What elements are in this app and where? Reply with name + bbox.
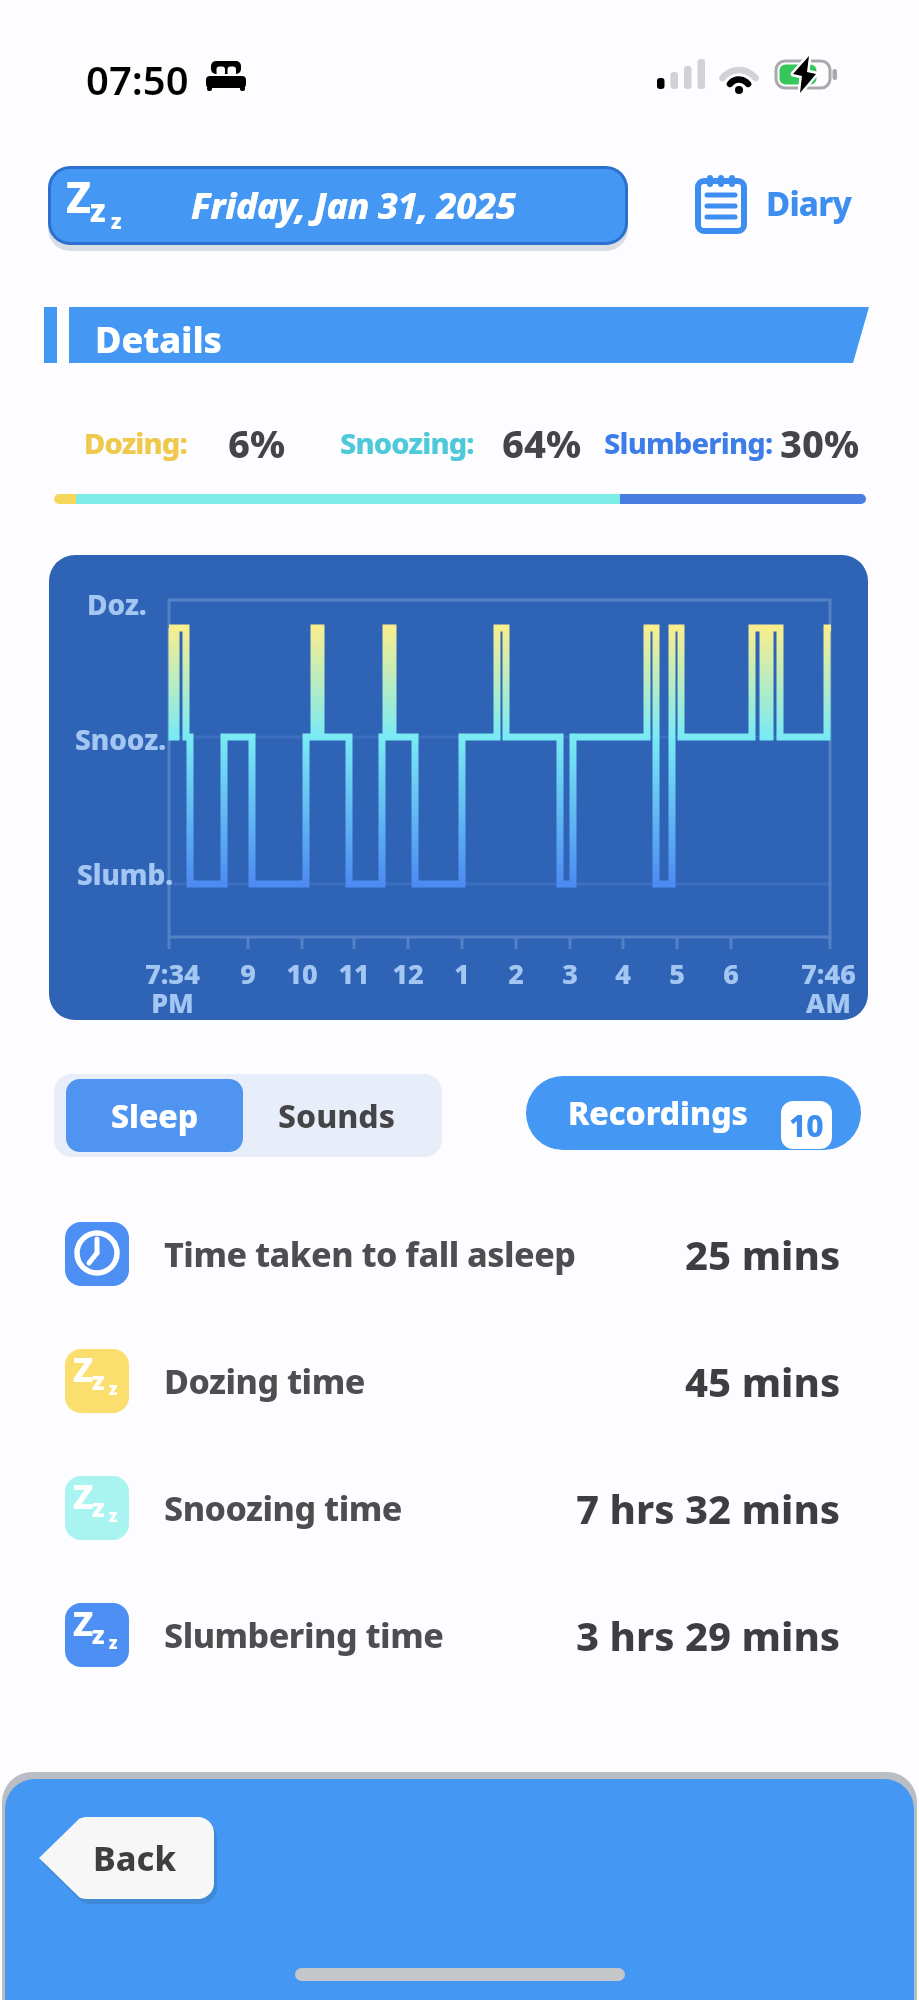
staticText: Snoozing time bbox=[164, 1485, 402, 1531]
staticText: Z bbox=[73, 1473, 94, 1519]
staticText: 11 bbox=[338, 955, 370, 992]
staticText: Slumbering: bbox=[604, 423, 773, 462]
staticText: Time taken to fall asleep bbox=[164, 1231, 576, 1277]
staticText: 3 hrs 29 mins bbox=[576, 1608, 841, 1662]
staticText: Recordings bbox=[568, 1091, 748, 1135]
staticText: z bbox=[109, 1631, 118, 1654]
staticText: 25 mins bbox=[685, 1227, 841, 1281]
staticText: Snooz. bbox=[75, 720, 167, 758]
staticText: z bbox=[109, 1377, 118, 1400]
staticText: 6 bbox=[723, 955, 739, 992]
staticText: Sounds bbox=[278, 1094, 396, 1138]
staticText: z bbox=[109, 1504, 118, 1527]
staticText: Z bbox=[73, 1600, 94, 1646]
staticText: Dozing: bbox=[84, 423, 187, 462]
staticText: Z bbox=[73, 1346, 94, 1392]
staticText: 7 hrs 32 mins bbox=[576, 1481, 841, 1535]
staticText: 10 bbox=[789, 1105, 824, 1146]
staticText: 12 bbox=[392, 955, 424, 992]
staticText: Diary bbox=[766, 181, 852, 226]
staticText: 7:34 PM bbox=[145, 955, 200, 1021]
staticText: Dozing time bbox=[164, 1358, 365, 1404]
button[interactable]: Sleep bbox=[66, 1079, 243, 1152]
staticText: Doz. bbox=[87, 585, 147, 623]
button[interactable]: Diary bbox=[698, 175, 852, 231]
button[interactable]: Z bbox=[65, 1603, 841, 1667]
staticText: 4 bbox=[615, 955, 631, 992]
staticText: z bbox=[92, 1617, 105, 1651]
staticText: Friday, Jan 31, 2025 bbox=[191, 181, 516, 230]
staticText: 30% bbox=[780, 417, 860, 469]
button[interactable]: Time taken to fall asleep bbox=[65, 1222, 841, 1286]
staticText: 45 mins bbox=[685, 1354, 841, 1408]
staticText: 07:50 bbox=[86, 52, 189, 106]
staticText: Back bbox=[93, 1835, 177, 1881]
staticText: 1 bbox=[454, 955, 470, 992]
button[interactable]: Recordings bbox=[526, 1076, 861, 1150]
button[interactable]: Sounds bbox=[243, 1079, 430, 1152]
staticText: 2 bbox=[508, 955, 524, 992]
staticText: 3 bbox=[562, 955, 578, 992]
staticText: z bbox=[92, 1363, 105, 1397]
staticText: Slumb. bbox=[77, 855, 174, 893]
staticText: Z bbox=[66, 168, 91, 225]
staticText: 9 bbox=[240, 955, 256, 992]
staticText: Sleep bbox=[111, 1094, 199, 1138]
staticText: z bbox=[92, 1490, 105, 1524]
staticText: Snoozing: bbox=[340, 423, 474, 462]
staticText: Details bbox=[95, 315, 222, 364]
staticText: 10 bbox=[286, 955, 318, 992]
staticText: z bbox=[111, 207, 122, 236]
button[interactable]: Back bbox=[39, 1817, 214, 1899]
button[interactable]: Friday, Jan 31, 2025 bbox=[51, 169, 625, 242]
staticText: z bbox=[90, 189, 106, 231]
button[interactable]: Z bbox=[65, 1476, 841, 1540]
staticText: 7:46 AM bbox=[801, 955, 856, 1021]
staticText: Slumbering time bbox=[164, 1612, 444, 1658]
staticText: 6% bbox=[228, 417, 286, 469]
staticText: 64% bbox=[502, 417, 582, 469]
staticText: 5 bbox=[669, 955, 685, 992]
button[interactable]: Z bbox=[65, 1349, 841, 1413]
